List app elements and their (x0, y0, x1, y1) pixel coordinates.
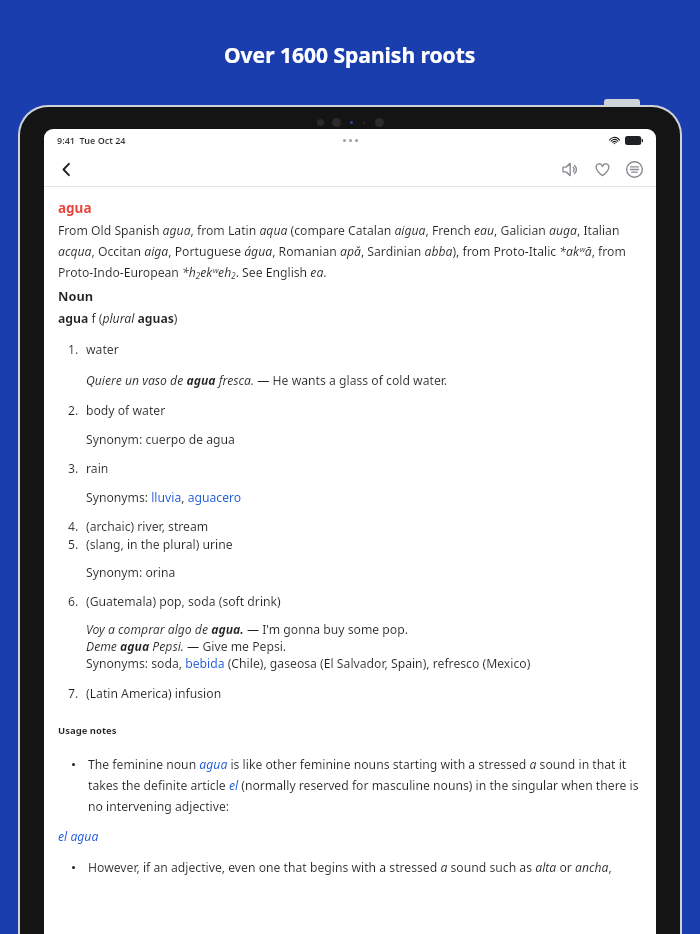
staticText: (Latin America) infusion (86, 685, 222, 702)
staticText: Synonyms: lluvia, aguacero (86, 489, 642, 506)
staticText: 1. (68, 341, 86, 358)
staticText: Over 1600 Spanish roots (224, 41, 476, 70)
staticText: However, if an adjective, even one that … (88, 859, 612, 876)
staticText: Noun (58, 287, 94, 304)
staticText: (archaic) river, stream (86, 518, 209, 535)
staticText: Usage notes (58, 724, 117, 737)
staticText: From Old Spanish agua, from Latin aqua (… (58, 222, 642, 282)
staticText: 6. (68, 593, 86, 610)
staticText: agua (58, 199, 92, 217)
staticText: 2. (68, 402, 86, 419)
staticText: rain (86, 460, 109, 477)
staticText: Synonym: orina (86, 564, 642, 581)
staticText: 7. (68, 685, 86, 702)
staticText: 5. (68, 536, 86, 553)
staticText: Voy a comprar algo de agua. — I'm gonna … (86, 621, 642, 638)
staticText: Quiere un vaso de agua fresca. — He want… (86, 372, 642, 389)
staticText: agua f (plural aguas) (58, 310, 178, 327)
staticText: (slang, in the plural) urine (86, 536, 233, 553)
staticText: (Guatemala) pop, soda (soft drink) (86, 593, 281, 610)
button[interactable]: Back (50, 153, 82, 185)
staticText: Synonyms: soda, bebida (Chile), gaseosa … (86, 655, 642, 672)
button[interactable]: Favorite (586, 153, 618, 185)
staticText: Deme agua Pepsi. — Give me Pepsi. (86, 638, 642, 655)
staticText: 9:41 Tue Oct 24 (57, 134, 126, 146)
staticText: body of water (86, 402, 166, 419)
staticText: Synonym: cuerpo de agua (86, 431, 642, 448)
staticText: 4. (68, 518, 86, 535)
button[interactable]: Menu (618, 153, 650, 185)
button[interactable]: Pronounce (554, 153, 586, 185)
staticText: 3. (68, 460, 86, 477)
staticText: The feminine noun agua is like other fem… (88, 756, 642, 815)
staticText: water (86, 341, 119, 358)
staticText: el agua (58, 828, 99, 845)
